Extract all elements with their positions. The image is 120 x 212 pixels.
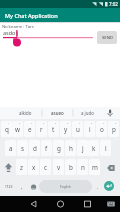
- staticText: n: [81, 163, 85, 172]
- button[interactable]: ,: [17, 178, 27, 194]
- staticText: a judo: [81, 110, 94, 116]
- button[interactable]: p: [108, 121, 119, 137]
- button[interactable]: n: [77, 159, 88, 175]
- button[interactable]: s: [17, 140, 28, 156]
- staticText: b: [69, 163, 73, 172]
- staticText: w: [15, 125, 20, 134]
- staticText: g: [57, 144, 61, 153]
- button[interactable]: u: [72, 121, 83, 137]
- button[interactable]: e: [24, 121, 35, 137]
- staticText: t: [52, 125, 55, 134]
- button[interactable]: .: [93, 178, 103, 194]
- staticText: 1: [8, 122, 10, 125]
- staticText: ?123: [5, 184, 13, 189]
- staticText: 0: [115, 122, 117, 125]
- staticText: d: [33, 144, 37, 153]
- staticText: c: [44, 163, 48, 172]
- button[interactable]: [1, 159, 16, 175]
- button[interactable]: b: [65, 159, 76, 175]
- staticText: 8: [91, 122, 93, 125]
- button[interactable]: m: [89, 159, 100, 175]
- staticText: 6: [67, 122, 69, 125]
- staticText: 7:02: [109, 1, 118, 7]
- staticText: p: [112, 125, 116, 134]
- staticText: u: [76, 125, 80, 134]
- button[interactable]: [47, 196, 74, 212]
- staticText: v: [57, 163, 61, 172]
- staticText: i: [89, 125, 91, 134]
- button[interactable]: v: [53, 159, 64, 175]
- button[interactable]: English: [39, 180, 92, 193]
- button[interactable]: y: [60, 121, 71, 137]
- staticText: x: [32, 163, 36, 172]
- button[interactable]: [74, 196, 101, 212]
- staticText: l: [105, 144, 107, 153]
- staticText: f: [45, 144, 48, 153]
- button[interactable]: f: [41, 140, 52, 156]
- button[interactable]: x: [28, 159, 39, 175]
- button[interactable]: q: [1, 121, 12, 137]
- staticText: q: [5, 125, 9, 134]
- button[interactable]: i: [84, 121, 95, 137]
- button[interactable]: c: [40, 159, 51, 175]
- staticText: English: [60, 185, 71, 189]
- button[interactable]: [104, 196, 120, 212]
- button[interactable]: j: [77, 140, 88, 156]
- staticText: Nickname : Tars: [2, 23, 34, 29]
- button[interactable]: d: [29, 140, 40, 156]
- button[interactable]: [20, 196, 47, 212]
- staticText: My Chat Application: [5, 12, 58, 19]
- staticText: .: [97, 183, 99, 190]
- staticText: 2: [19, 122, 21, 125]
- button[interactable]: ?123: [1, 178, 16, 194]
- staticText: o: [100, 125, 104, 134]
- staticText: s: [21, 144, 25, 153]
- staticText: k: [92, 144, 96, 153]
- button[interactable]: o: [96, 121, 107, 137]
- button[interactable]: r: [36, 121, 47, 137]
- staticText: alkido: [19, 110, 32, 116]
- staticText: 4: [43, 122, 45, 125]
- button[interactable]: [104, 159, 119, 175]
- button[interactable]: z: [16, 159, 27, 175]
- staticText: z: [20, 163, 23, 172]
- button[interactable]: l: [100, 140, 111, 156]
- staticText: j: [82, 144, 84, 153]
- staticText: y: [64, 125, 68, 134]
- staticText: 3: [31, 122, 33, 125]
- staticText: m: [92, 163, 98, 172]
- staticText: SEND: [102, 35, 113, 41]
- staticText: h: [69, 144, 73, 153]
- staticText: 9: [103, 122, 105, 125]
- staticText: 7: [79, 122, 81, 125]
- button[interactable]: k: [88, 140, 99, 156]
- staticText: r: [40, 125, 43, 134]
- staticText: asueo: [51, 110, 64, 116]
- button[interactable]: SEND: [97, 31, 117, 44]
- button[interactable]: t: [48, 121, 59, 137]
- staticText: 5: [55, 122, 57, 125]
- staticText: e: [28, 125, 32, 134]
- button[interactable]: [27, 178, 40, 194]
- staticText: a: [9, 144, 13, 153]
- button[interactable]: w: [12, 121, 23, 137]
- staticText: ,: [21, 183, 23, 190]
- button[interactable]: a: [5, 140, 16, 156]
- staticText: asdoij: [3, 29, 19, 36]
- button[interactable]: [104, 181, 114, 191]
- button[interactable]: h: [65, 140, 76, 156]
- button[interactable]: g: [53, 140, 64, 156]
